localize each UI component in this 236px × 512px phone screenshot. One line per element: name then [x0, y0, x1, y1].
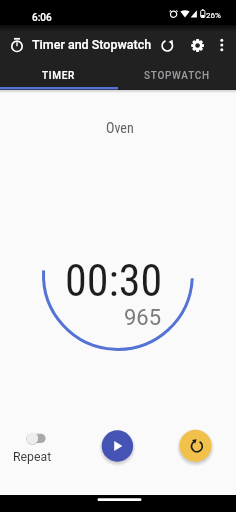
staticText: 26%	[206, 11, 221, 20]
staticText: Timer and Stopwatch	[32, 37, 152, 52]
staticText: TIMER	[42, 70, 76, 82]
staticText: 6:06	[32, 12, 52, 24]
staticText: STOPWATCH	[144, 70, 210, 82]
staticText: Repeat	[13, 450, 52, 464]
staticText: 965	[124, 305, 162, 331]
staticText: 00:30	[65, 255, 163, 307]
staticText: Oven	[106, 120, 134, 136]
